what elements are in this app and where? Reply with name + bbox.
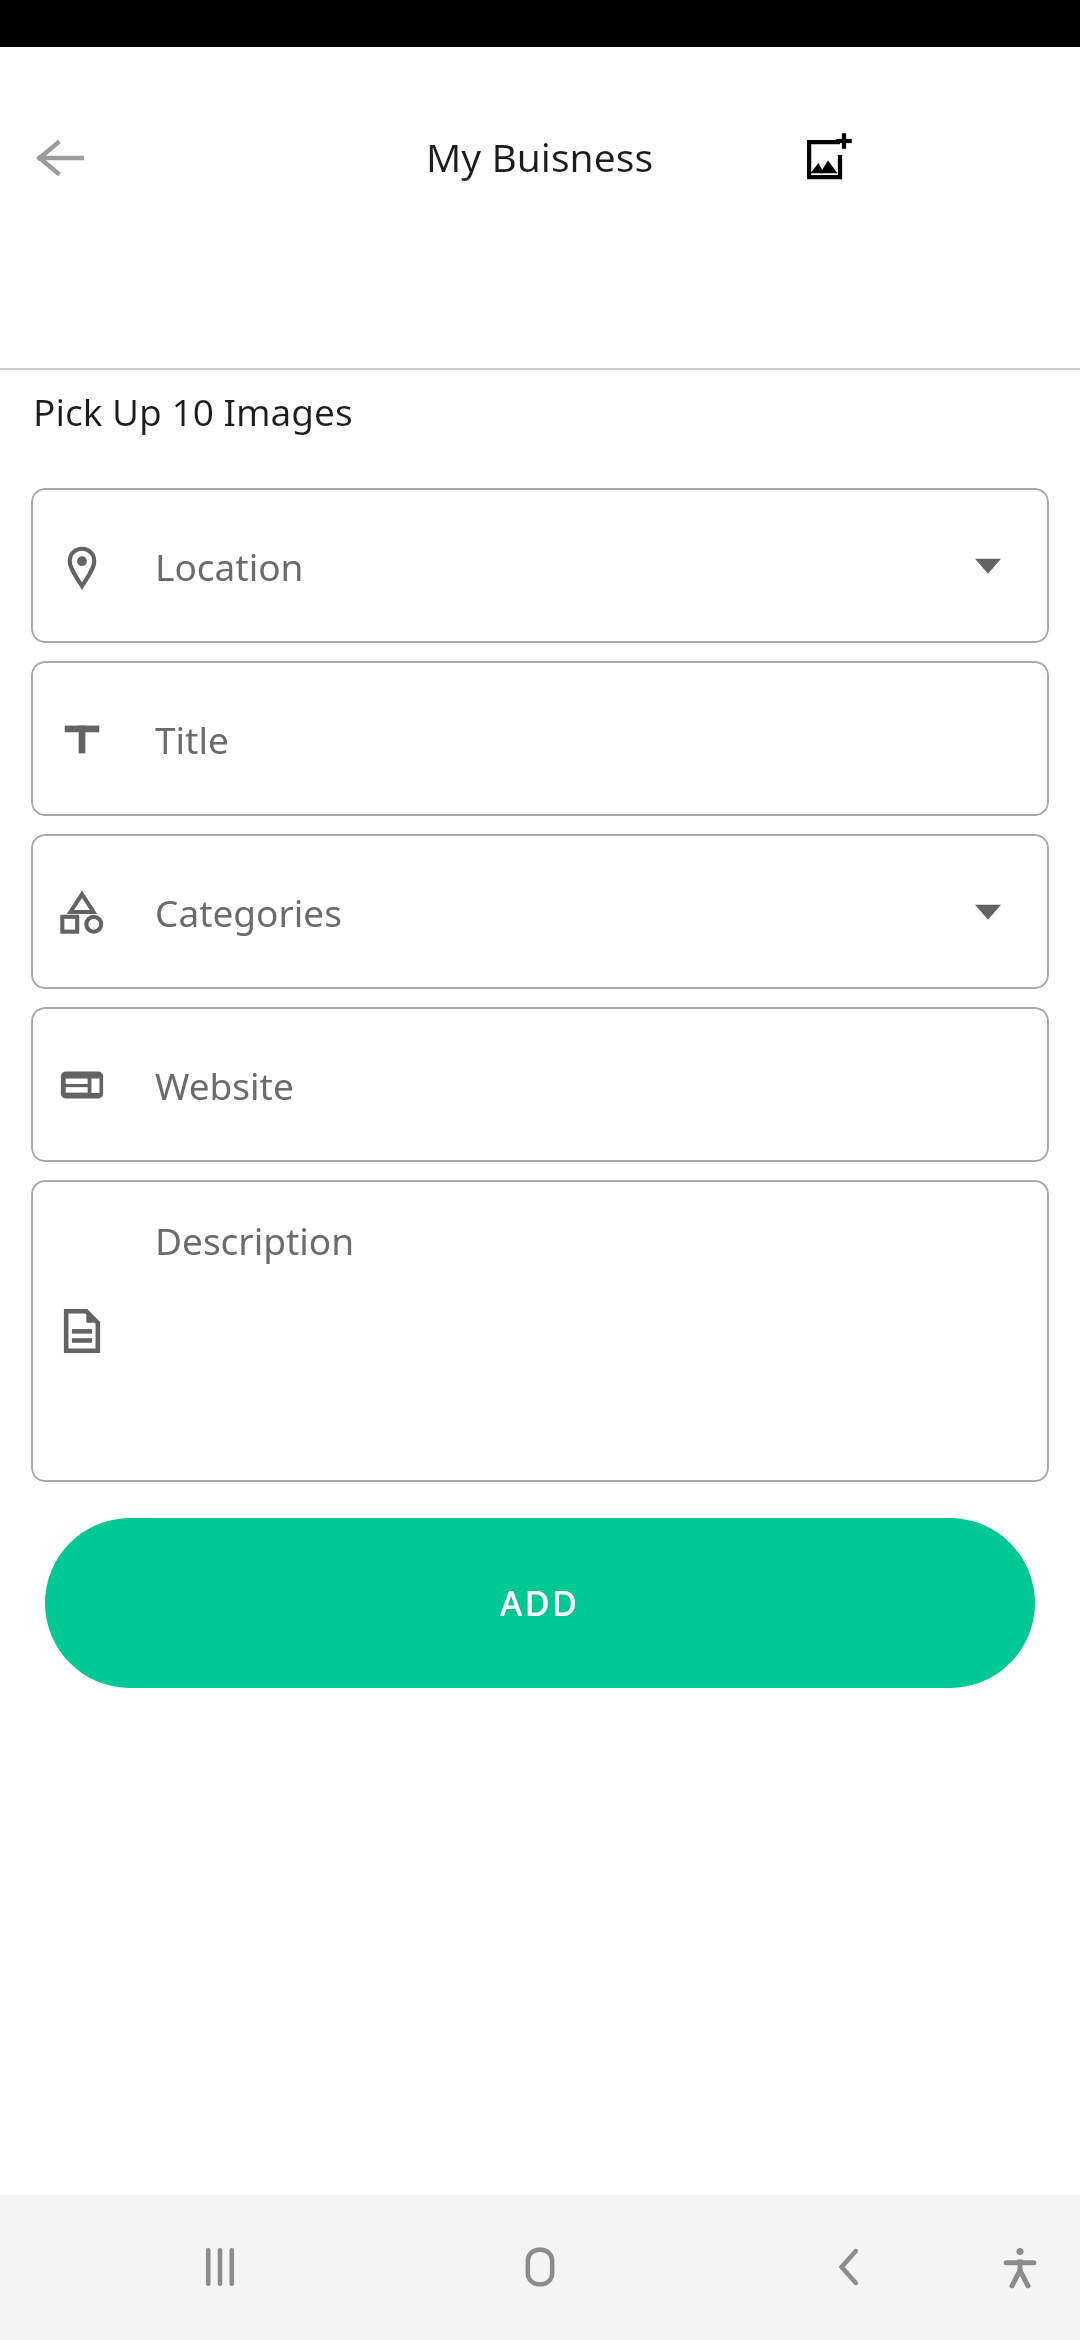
button[interactable]: Location [31, 488, 1049, 643]
staticText: ADD [500, 1580, 580, 1626]
button[interactable]: Home [500, 2227, 580, 2307]
staticText: Description [155, 1215, 355, 1265]
button[interactable]: Categories [31, 834, 1049, 989]
button[interactable]: ADD [45, 1518, 1035, 1688]
button[interactable]: Description [31, 1180, 1049, 1482]
staticText: Categories [155, 887, 342, 937]
button[interactable]: Back [24, 122, 96, 194]
button[interactable]: Add image [790, 119, 868, 197]
button[interactable]: Back [810, 2227, 890, 2307]
staticText: Pick Up 10 Images [33, 386, 353, 436]
button[interactable]: Recents [180, 2227, 260, 2307]
button[interactable]: Title [31, 661, 1049, 816]
staticText: Location [155, 541, 304, 591]
staticText: Website [155, 1060, 294, 1110]
staticText: Title [155, 714, 229, 764]
staticText: My Buisness [426, 130, 654, 183]
button[interactable]: Website [31, 1007, 1049, 1162]
button[interactable]: Accessibility [980, 2227, 1060, 2307]
